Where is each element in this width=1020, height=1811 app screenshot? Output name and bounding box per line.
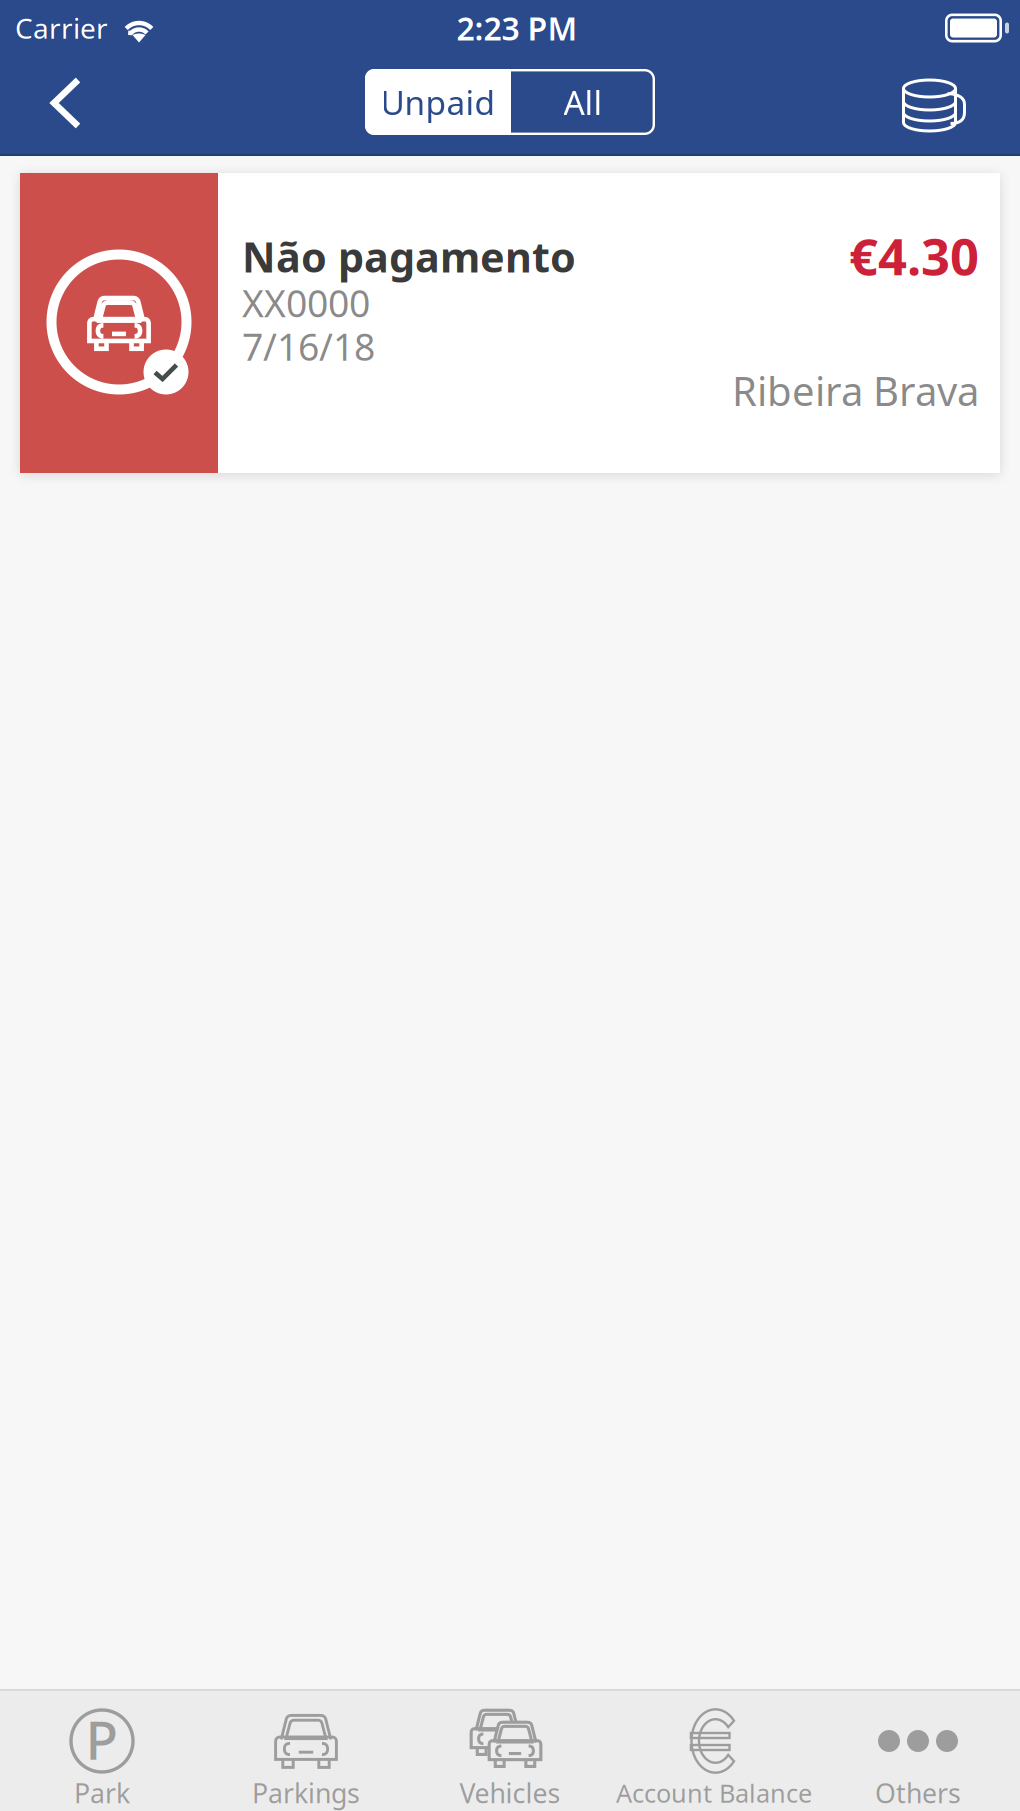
- staticText: Carrier: [15, 9, 108, 47]
- button[interactable]: Back: [22, 56, 110, 156]
- staticText: Unpaid: [380, 80, 495, 124]
- staticText: €4.30: [849, 222, 979, 289]
- button[interactable]: Account Balance: [612, 1691, 816, 1811]
- staticText: 7/16/18: [242, 321, 375, 371]
- staticText: Vehicles: [459, 1775, 560, 1811]
- staticText: Others: [875, 1775, 961, 1811]
- button[interactable]: Account balance: [885, 56, 985, 156]
- button[interactable]: All: [511, 69, 655, 135]
- button[interactable]: Parkings: [204, 1691, 408, 1811]
- staticText: Park: [74, 1775, 130, 1811]
- button[interactable]: Vehicles: [408, 1691, 612, 1811]
- button[interactable]: Others: [816, 1691, 1020, 1811]
- staticText: P: [85, 1704, 118, 1774]
- button[interactable]: Não pagamento: [20, 173, 1000, 473]
- button[interactable]: Unpaid: [365, 69, 511, 135]
- staticText: 2:23 PM: [456, 7, 577, 49]
- staticText: XX0000: [242, 278, 370, 327]
- staticText: Não pagamento: [242, 229, 576, 284]
- staticText: Parkings: [252, 1775, 360, 1811]
- staticText: Account Balance: [616, 1776, 812, 1810]
- button[interactable]: P: [0, 1691, 204, 1811]
- staticText: Ribeira Brava: [732, 364, 979, 417]
- staticText: All: [563, 80, 602, 124]
